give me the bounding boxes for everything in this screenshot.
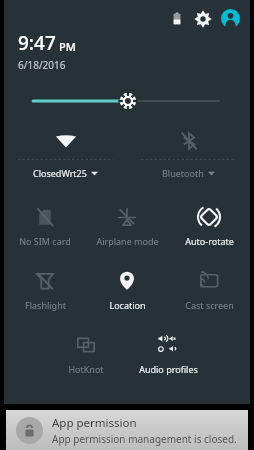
staticText: Cast screen [185, 299, 234, 311]
button[interactable]: Brightness [4, 86, 250, 116]
staticText: Bluetooth [162, 167, 204, 179]
button[interactable]: HotKnot [45, 328, 127, 384]
staticText: App permission management is closed. [52, 432, 237, 446]
button[interactable]: Audio profiles [127, 328, 209, 384]
staticText: Audio profiles [139, 363, 198, 375]
button[interactable]: Bluetooth [127, 126, 250, 188]
staticText: No SIM card [19, 235, 71, 247]
staticText: Flashlight [25, 299, 66, 311]
staticText: 9:47 [18, 30, 56, 56]
staticText: App permission [52, 415, 137, 431]
staticText: PM [59, 39, 76, 54]
staticText: Auto-rotate [185, 235, 234, 247]
staticText: ClosedWrt25 [33, 167, 87, 179]
staticText: Airplane mode [96, 235, 159, 247]
staticText: 6/18/2016 [18, 58, 66, 72]
staticText: Location [109, 299, 146, 311]
button[interactable]: Auto-rotate [168, 200, 250, 256]
button[interactable]: Airplane mode [86, 200, 168, 256]
button[interactable]: Flashlight [4, 264, 86, 320]
button[interactable]: App permission [6, 410, 248, 450]
button[interactable]: No SIM card [4, 200, 86, 256]
button[interactable]: Settings [194, 10, 212, 28]
button[interactable]: ClosedWrt25 [4, 126, 127, 188]
button[interactable]: Location [86, 264, 168, 320]
button[interactable]: User profile [221, 9, 240, 28]
staticText: HotKnot [68, 363, 104, 375]
button[interactable]: Cast screen [168, 264, 250, 320]
